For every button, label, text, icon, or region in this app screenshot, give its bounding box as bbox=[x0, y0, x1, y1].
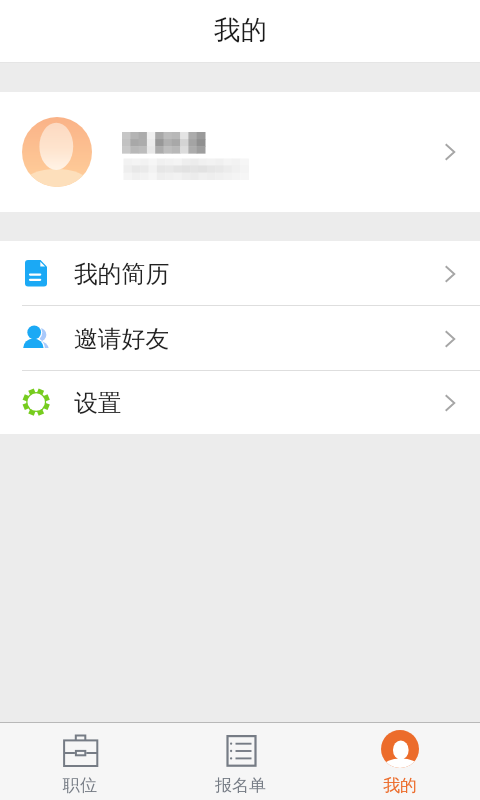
staticText: 邀请好友 bbox=[74, 324, 170, 354]
button[interactable]: Profile, edit account bbox=[0, 92, 480, 212]
staticText: 我的 bbox=[383, 775, 417, 796]
button[interactable]: 职位 bbox=[0, 723, 160, 800]
staticText: 报名单 bbox=[215, 775, 266, 796]
staticText: 我的简历 bbox=[74, 259, 170, 289]
button[interactable]: 报名单 bbox=[160, 723, 320, 800]
button[interactable]: 设置 bbox=[0, 370, 480, 434]
staticText: 职位 bbox=[63, 775, 97, 796]
staticText: 设置 bbox=[74, 388, 122, 418]
staticText: 我的 bbox=[214, 13, 267, 46]
button[interactable]: 我的简历 bbox=[0, 241, 480, 305]
button[interactable]: 邀请好友 bbox=[0, 305, 480, 370]
button[interactable]: 我的 bbox=[320, 723, 480, 800]
